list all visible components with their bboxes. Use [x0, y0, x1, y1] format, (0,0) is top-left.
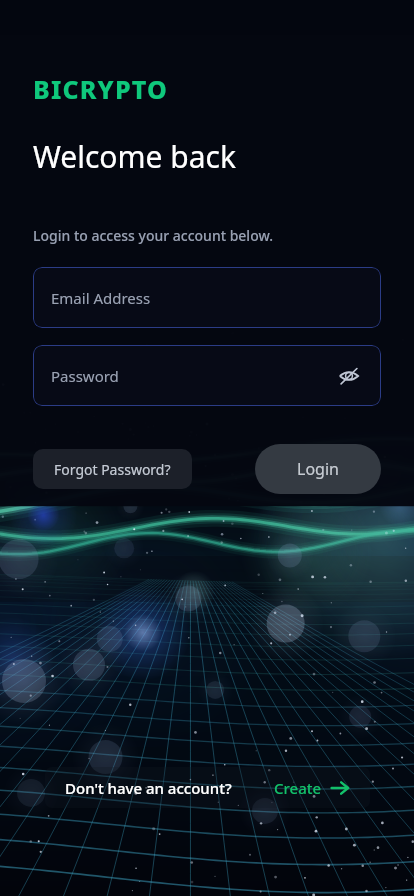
button[interactable]: Show password	[335, 362, 363, 390]
staticText: Forgot Password?	[54, 460, 171, 479]
staticText: Login to access your account below.	[33, 226, 273, 245]
staticText: Create	[274, 778, 322, 798]
staticText: Email Address	[51, 288, 151, 308]
button[interactable]: Don't have an account?	[45, 767, 370, 808]
other: Create account	[330, 778, 350, 798]
button[interactable]: Forgot Password?	[33, 449, 192, 489]
staticText: Don't have an account?	[65, 778, 232, 798]
staticText: Login	[297, 458, 339, 480]
staticText: Password	[51, 366, 119, 386]
button[interactable]: Password	[33, 345, 381, 406]
staticText: BICRYPTO	[33, 72, 169, 106]
staticText: Welcome back	[33, 136, 236, 177]
button[interactable]: Email Address	[33, 267, 381, 328]
button[interactable]: Login	[255, 444, 381, 494]
